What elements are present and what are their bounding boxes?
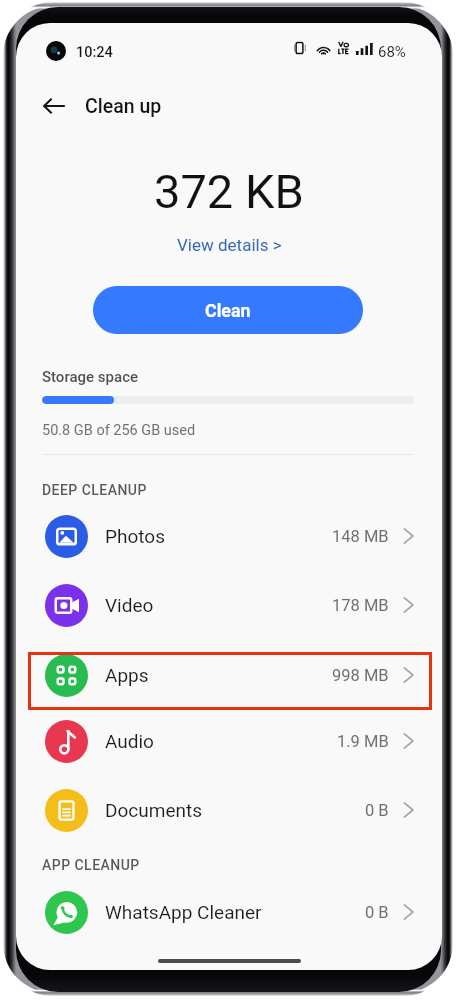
staticText: Clean up — [85, 95, 162, 118]
staticText: 0 B — [365, 801, 389, 820]
staticText: Apps — [105, 664, 149, 686]
button[interactable]: Clean — [93, 286, 363, 334]
staticText: 1.9 MB — [337, 732, 389, 751]
staticText: Audio — [105, 730, 154, 752]
staticText: DEEP CLEANUP — [42, 482, 147, 498]
staticText: 68% — [378, 43, 406, 61]
staticText: APP CLEANUP — [42, 857, 140, 873]
button[interactable]: Photos — [28, 513, 432, 559]
button[interactable]: Documents — [28, 787, 432, 833]
button[interactable]: WhatsApp Cleaner — [28, 889, 432, 935]
staticText: 372 KB — [154, 164, 304, 216]
staticText: 10:24 — [76, 44, 113, 61]
staticText: 998 MB — [332, 666, 389, 685]
button[interactable]: Back — [40, 92, 68, 120]
staticText: Video — [105, 594, 154, 616]
staticText: Documents — [105, 799, 202, 821]
staticText: View details > — [177, 235, 282, 255]
button[interactable]: Video — [28, 582, 432, 628]
staticText: WhatsApp Cleaner — [105, 901, 262, 923]
button[interactable]: Audio — [28, 718, 432, 764]
button[interactable]: View details > — [177, 235, 282, 255]
staticText: Photos — [105, 525, 165, 547]
staticText: Storage space — [42, 368, 139, 386]
staticText: 0 B — [365, 903, 389, 922]
staticText: 178 MB — [332, 596, 389, 615]
staticText: Clean — [205, 300, 251, 321]
button[interactable]: Apps — [28, 652, 432, 698]
staticText: 148 MB — [332, 527, 389, 546]
staticText: 50.8 GB of 256 GB used — [42, 422, 196, 439]
